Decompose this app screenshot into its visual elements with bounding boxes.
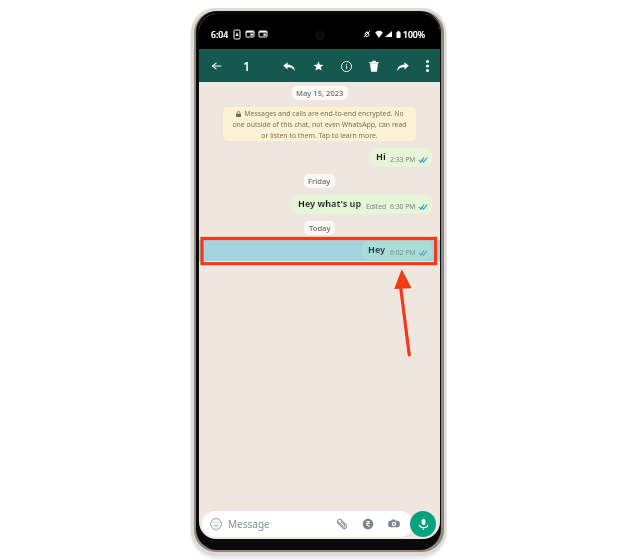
staticText: May 15, 2023 [296,88,344,98]
staticText: 100% [403,29,426,41]
button[interactable]: Info [333,53,359,79]
button[interactable]: Hi [370,148,432,167]
button[interactable]: Hey [199,240,440,261]
button[interactable]: Forward [390,53,416,79]
staticText: one outside of this chat, not even Whats… [232,120,407,129]
staticText: Today [309,223,331,233]
staticText: 6:02 PM [390,248,416,257]
button[interactable]: Reply [276,53,302,79]
button[interactable]: Voice message [410,511,436,537]
button[interactable]: Hey what's up [292,195,432,214]
button[interactable]: Payment [362,518,374,530]
button[interactable]: Hey [362,241,432,260]
staticText: 1 [243,57,251,75]
staticText: 2:33 PM [390,155,416,164]
button[interactable]: Back [205,55,227,77]
button[interactable]: Today [304,221,335,235]
staticText: or listen to them. Tap to learn more. [261,131,378,140]
staticText: 6:04 [211,29,229,41]
staticText: Message [228,517,270,531]
staticText: Edited [366,202,387,211]
button[interactable]: May 15, 2023 [292,86,348,100]
button[interactable]: Friday [304,174,335,188]
staticText: Hi [376,150,386,162]
button[interactable]: Delete [361,53,387,79]
button[interactable]: Emoji [202,511,413,537]
button[interactable]: Attach [336,518,348,530]
staticText: Messages and calls are end-to-end encryp… [244,109,404,118]
button[interactable]: Emoji [210,518,222,530]
staticText: Hey what's up [298,197,362,209]
staticText: Hey [368,243,386,255]
button[interactable]: More options [414,53,440,79]
staticText: Friday [308,176,331,186]
button[interactable]: Messages and calls are end-to-end encryp… [223,107,416,141]
button[interactable]: Star [305,53,331,79]
button[interactable]: Camera [388,518,400,530]
staticText: 6:30 PM [390,202,416,211]
